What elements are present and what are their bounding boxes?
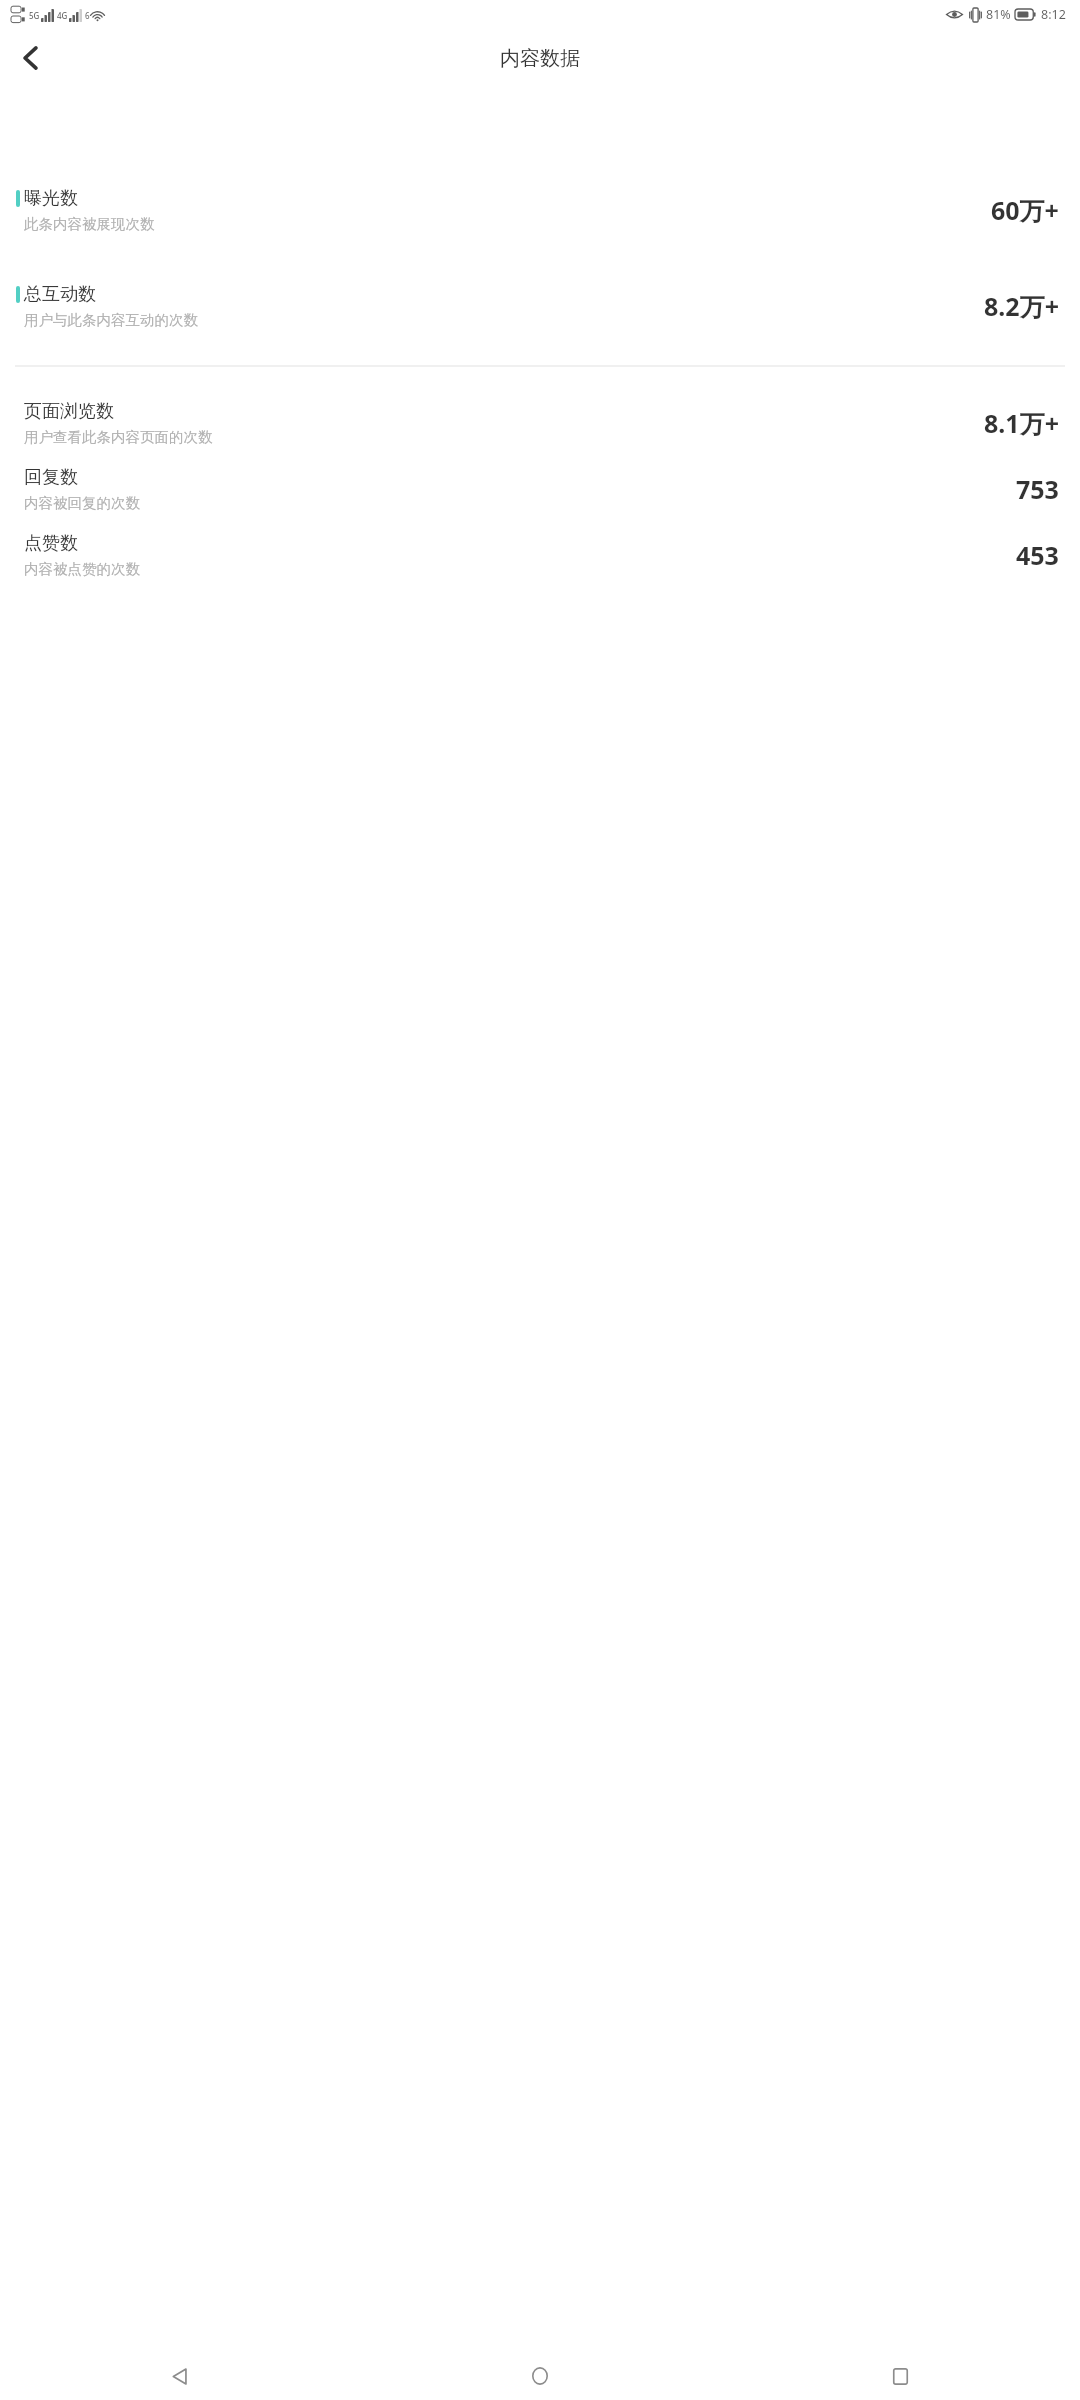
staticText: 此条内容被展现次数 [24, 215, 155, 233]
button[interactable]: 点赞数 [0, 532, 1080, 578]
staticText: 点赞数 [24, 532, 78, 555]
staticText: 内容数据 [500, 46, 580, 71]
staticText: 453 [1016, 538, 1059, 572]
staticText: 回复数 [24, 466, 78, 489]
button[interactable]: 回复数 [0, 466, 1080, 512]
staticText: 5G [29, 10, 40, 21]
button[interactable]: Back [151, 2352, 209, 2400]
staticText: 753 [1016, 472, 1059, 506]
staticText: 页面浏览数 [24, 400, 114, 423]
button[interactable]: Back [6, 34, 54, 82]
staticText: 内容被回复的次数 [24, 494, 140, 512]
staticText: 60万+ [991, 193, 1059, 227]
button[interactable]: Recents [871, 2352, 929, 2400]
staticText: 4G [57, 10, 68, 21]
staticText: 8:12 [1041, 6, 1066, 23]
staticText: 内容被点赞的次数 [24, 560, 140, 578]
staticText: 8.1万+ [984, 406, 1059, 440]
button[interactable]: 总互动数 [0, 283, 1080, 329]
staticText: 6 [85, 10, 90, 21]
staticText: 用户与此条内容互动的次数 [24, 311, 198, 329]
staticText: 总互动数 [24, 283, 96, 306]
staticText: 用户查看此条内容页面的次数 [24, 428, 213, 446]
button[interactable]: 曝光数 [0, 187, 1080, 233]
staticText: 8.2万+ [984, 289, 1059, 323]
button[interactable]: 页面浏览数 [0, 400, 1080, 446]
staticText: 曝光数 [24, 187, 78, 210]
button[interactable]: Home [511, 2352, 569, 2400]
staticText: 81% [986, 6, 1011, 23]
